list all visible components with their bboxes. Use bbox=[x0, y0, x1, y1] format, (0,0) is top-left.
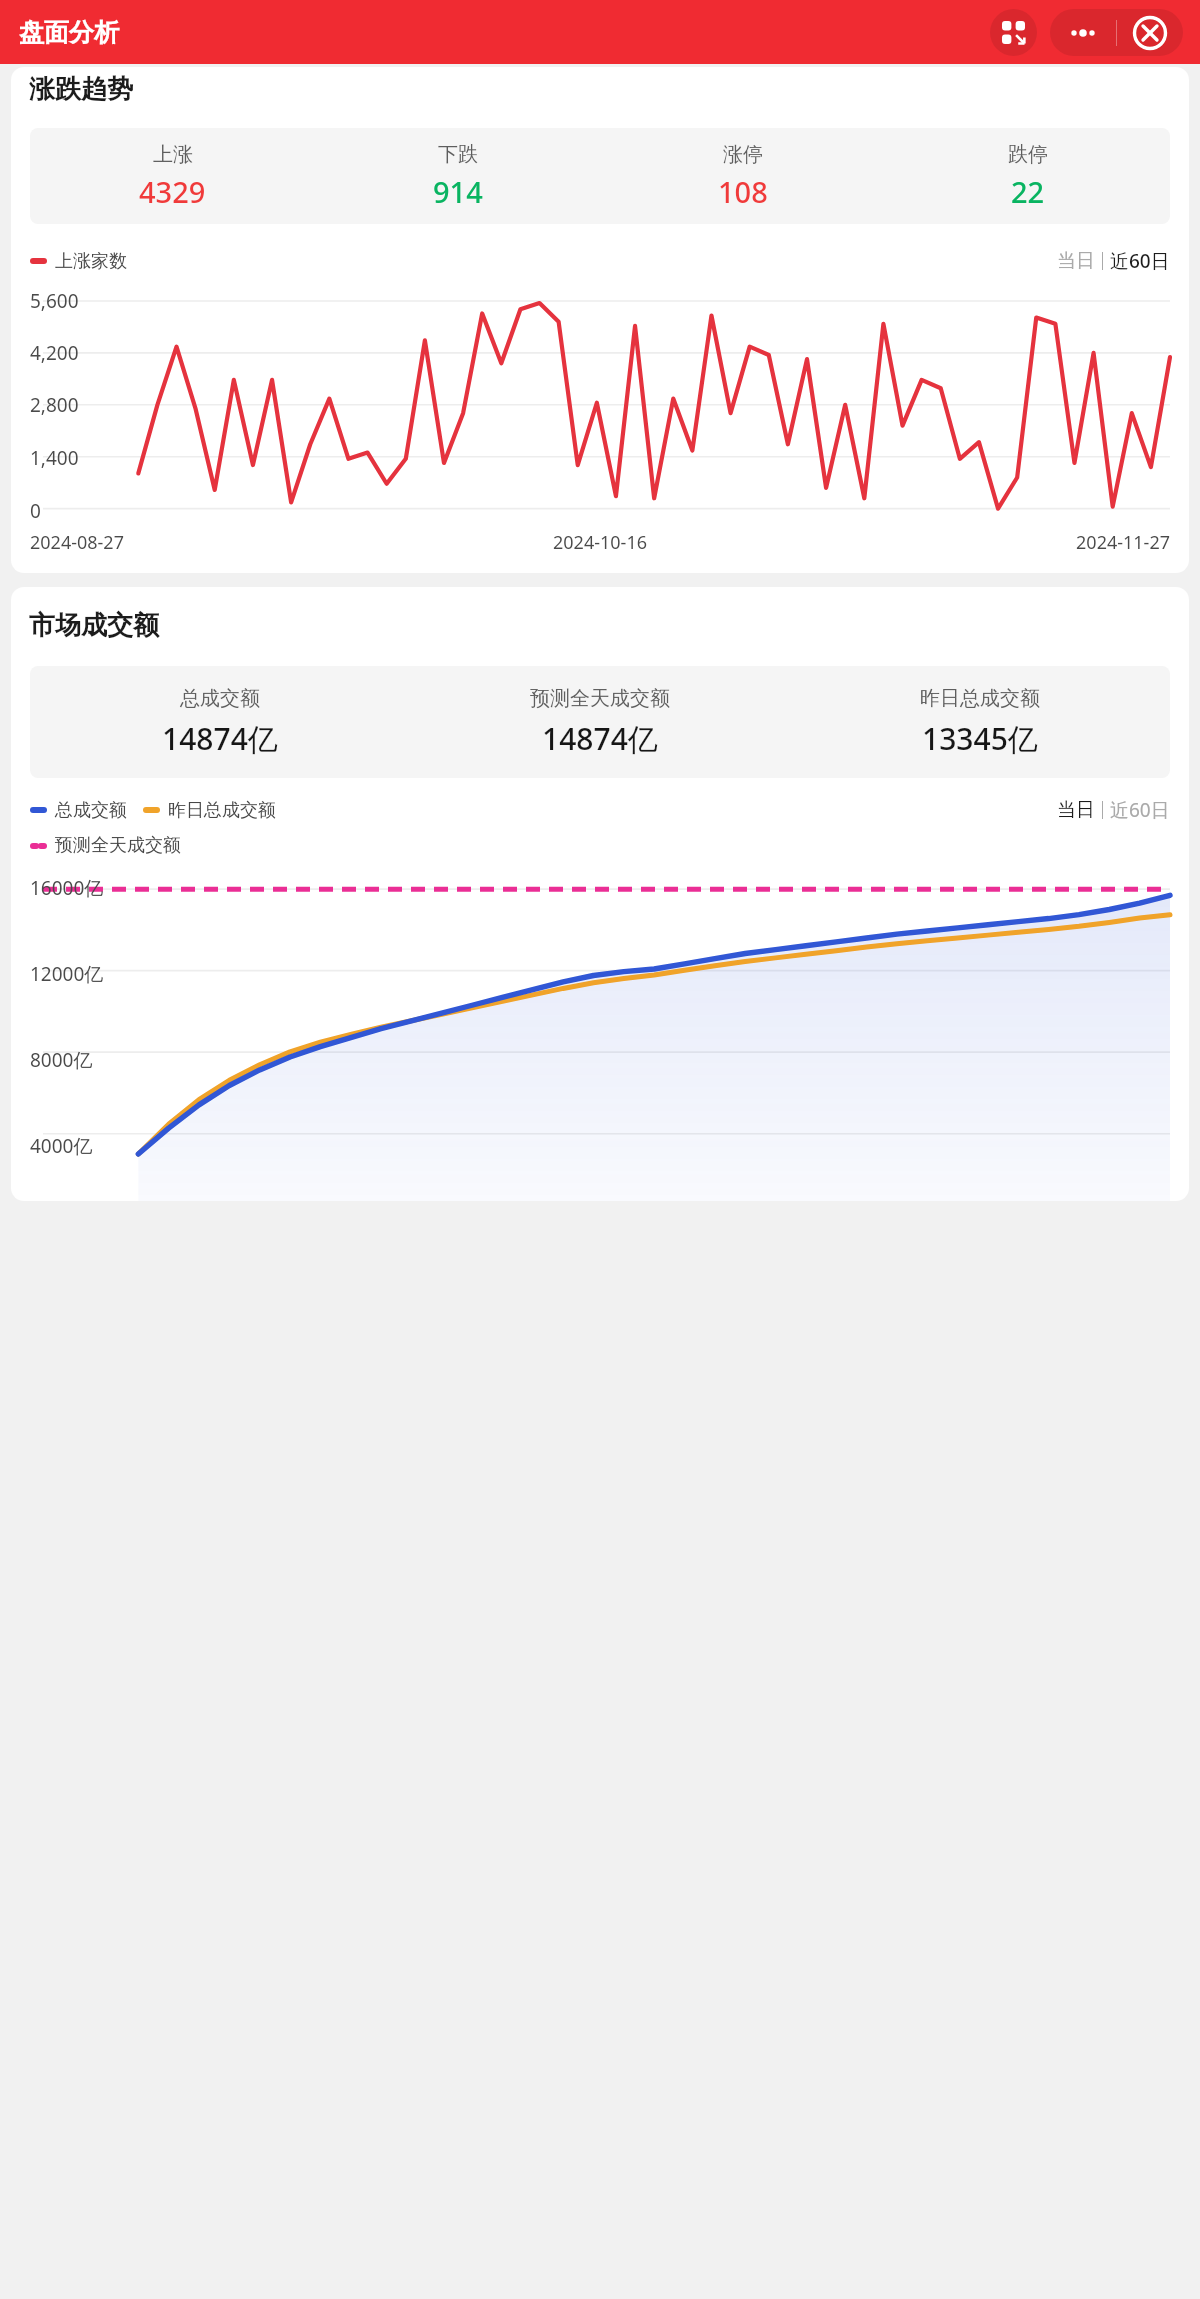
staticText: 预测全天成交额 bbox=[55, 834, 181, 857]
button[interactable]: 昨日总成交额 bbox=[790, 686, 1170, 759]
staticText: 昨日总成交额 bbox=[920, 686, 1040, 711]
staticText: 涨跌趋势 bbox=[29, 73, 133, 106]
staticText: 14874亿 bbox=[542, 718, 658, 759]
staticText: 当日 bbox=[1057, 249, 1095, 273]
button[interactable]: 当日 bbox=[1057, 798, 1095, 822]
staticText: 预测全天成交额 bbox=[530, 686, 670, 711]
staticText: 2024-08-27 bbox=[30, 530, 410, 555]
button[interactable]: 近60日 bbox=[1110, 797, 1170, 823]
staticText: 12000亿 bbox=[30, 961, 104, 987]
staticText: 总成交额 bbox=[55, 799, 127, 822]
staticText: 5,600 bbox=[30, 288, 79, 314]
staticText: 跌停 bbox=[1008, 142, 1048, 167]
staticText: 16000亿 bbox=[30, 875, 104, 901]
staticText: 2024-10-16 bbox=[410, 530, 790, 555]
staticText: 4329 bbox=[139, 172, 206, 211]
button[interactable]: 总成交额 bbox=[30, 686, 410, 759]
staticText: 下跌 bbox=[438, 142, 478, 167]
staticText: 昨日总成交额 bbox=[168, 799, 276, 822]
staticText: 涨停 bbox=[723, 142, 763, 167]
staticText: 2,800 bbox=[30, 392, 79, 418]
staticText: 4000亿 bbox=[30, 1133, 93, 1159]
button[interactable]: 跌停 bbox=[885, 142, 1170, 211]
staticText: 14874亿 bbox=[162, 718, 278, 759]
staticText: 盘面分析 bbox=[19, 17, 119, 48]
staticText: 上涨 bbox=[153, 142, 193, 167]
button[interactable]: 上涨 bbox=[30, 142, 315, 211]
button[interactable]: 下跌 bbox=[315, 142, 600, 211]
staticText: 上涨家数 bbox=[55, 250, 127, 273]
staticText: 1,400 bbox=[30, 445, 79, 471]
button[interactable]: 当日 bbox=[1057, 249, 1095, 273]
button[interactable]: Mini program panel bbox=[990, 9, 1037, 56]
button[interactable]: 近60日 bbox=[1110, 248, 1170, 274]
staticText: 0 bbox=[30, 498, 41, 524]
staticText: 市场成交额 bbox=[29, 609, 159, 642]
staticText: 总成交额 bbox=[180, 686, 260, 711]
button[interactable]: Close bbox=[1117, 9, 1183, 56]
button[interactable]: 预测全天成交额 bbox=[410, 686, 790, 759]
staticText: 当日 bbox=[1057, 798, 1095, 822]
button[interactable]: More bbox=[1050, 9, 1116, 56]
staticText: 22 bbox=[1011, 172, 1045, 211]
staticText: 2024-11-27 bbox=[790, 530, 1170, 555]
staticText: 4,200 bbox=[30, 340, 79, 366]
staticText: 108 bbox=[718, 172, 768, 211]
button[interactable]: 涨停 bbox=[600, 142, 885, 211]
staticText: 13345亿 bbox=[922, 718, 1038, 759]
staticText: 近60日 bbox=[1110, 797, 1170, 823]
staticText: 914 bbox=[433, 172, 483, 211]
staticText: 近60日 bbox=[1110, 248, 1170, 274]
staticText: 8000亿 bbox=[30, 1047, 93, 1073]
